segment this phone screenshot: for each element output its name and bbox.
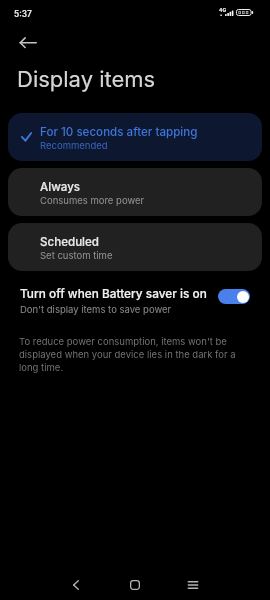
staticText: Recommended — [40, 140, 108, 151]
staticText: For 10 seconds after tapping — [40, 125, 198, 139]
staticText: Always — [40, 180, 81, 194]
button[interactable]: Always — [8, 168, 262, 216]
staticText: Turn off when Battery saver is on — [20, 287, 207, 301]
staticText: To reduce power consumption, items won't… — [19, 335, 241, 374]
staticText: Consumes more power — [40, 195, 145, 206]
staticText: Don't display items to save power — [20, 304, 172, 315]
button[interactable]: Turn off when Battery saver is on — [218, 289, 250, 304]
button[interactable]: Scheduled — [8, 223, 262, 271]
button[interactable]: Back — [56, 565, 96, 600]
staticText: Set custom time — [40, 250, 113, 261]
staticText: Scheduled — [40, 235, 100, 249]
button[interactable]: Home — [115, 565, 155, 600]
button[interactable]: For 10 seconds after tapping — [8, 113, 262, 161]
staticText: 4G — [219, 7, 227, 13]
staticText: 5:37 — [14, 9, 32, 19]
staticText: Display items — [17, 66, 156, 93]
button[interactable]: Turn off when Battery saver is on — [0, 279, 270, 321]
button[interactable]: Recent apps — [173, 565, 213, 600]
button[interactable]: Navigate up — [14, 29, 42, 57]
